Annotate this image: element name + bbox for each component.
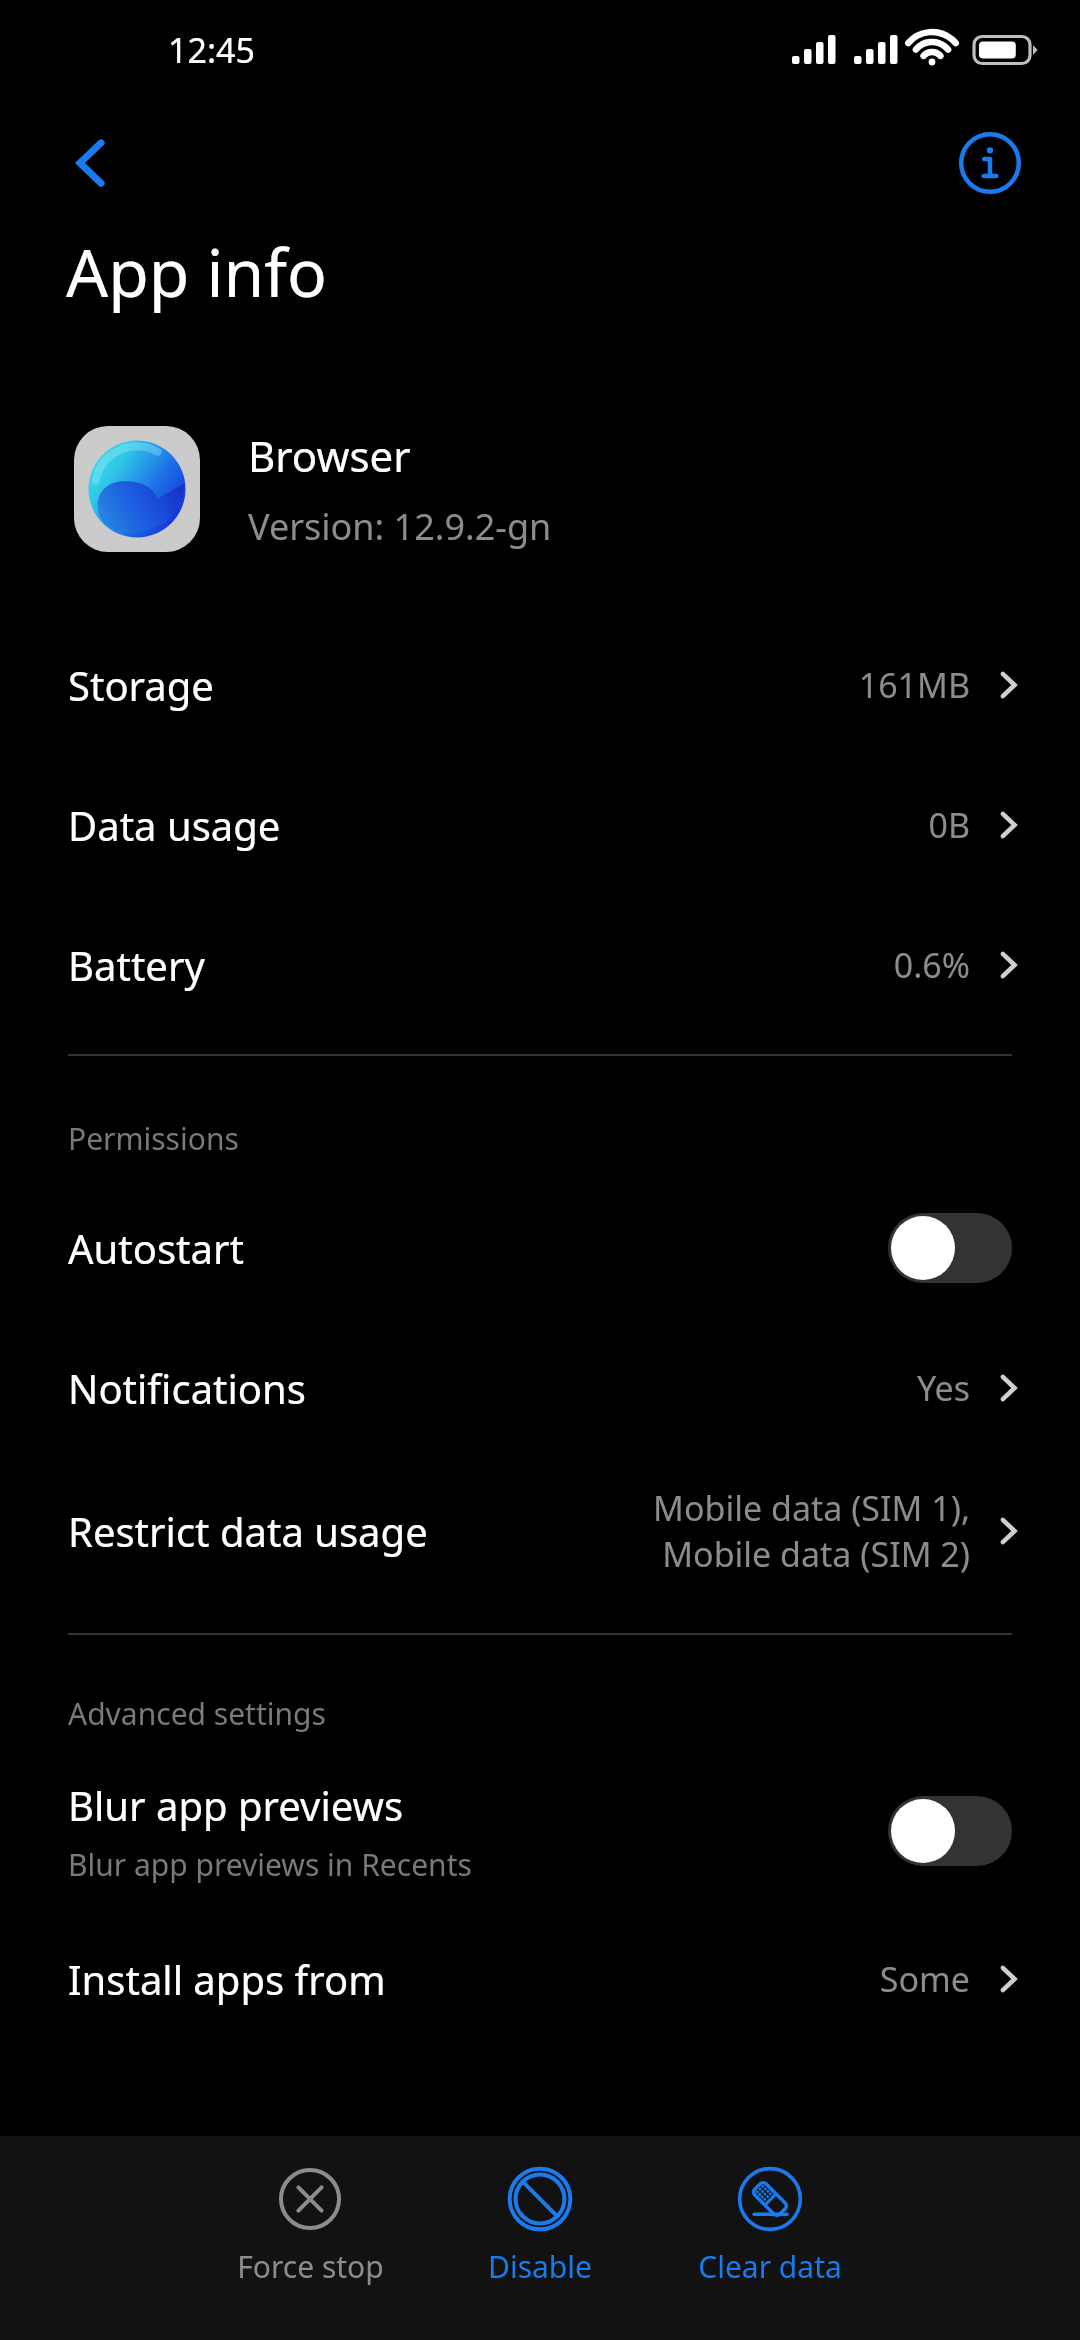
button[interactable]: Storage	[0, 638, 1080, 732]
staticText: Version: 12.9.2-gn	[248, 502, 552, 551]
staticText: App info	[66, 226, 1080, 316]
staticText: Clear data	[698, 2246, 842, 2287]
staticText: Mobile data (SIM 1),	[653, 1485, 970, 1531]
staticText: Restrict data usage	[68, 1504, 653, 1558]
button[interactable]: Autostart	[0, 1201, 1080, 1295]
staticText: Force stop	[237, 2246, 384, 2287]
button[interactable]: Force stop	[195, 2158, 425, 2295]
staticText: Install apps from	[68, 1952, 879, 2006]
button[interactable]: Battery	[0, 918, 1080, 1012]
button[interactable]: Install apps from	[0, 1932, 1080, 2026]
staticText: Storage	[68, 658, 858, 712]
staticText: Yes	[916, 1365, 970, 1411]
button[interactable]: Restrict data usage	[0, 1471, 1080, 1591]
button[interactable]: Notifications	[0, 1341, 1080, 1435]
staticText: Browser	[248, 427, 411, 484]
staticText: Blur app previews	[68, 1778, 404, 1832]
staticText: Disable	[488, 2246, 592, 2287]
button[interactable]: Disable	[425, 2158, 655, 2295]
staticText: 12:45	[168, 27, 255, 73]
button[interactable]: Clear data	[655, 2158, 885, 2295]
staticText: Advanced settings	[68, 1693, 1080, 1734]
staticText: Battery	[68, 938, 893, 992]
staticText: Blur app previews in Recents	[68, 1844, 472, 1885]
staticText: 0.6%	[893, 942, 970, 988]
staticText: Notifications	[68, 1361, 916, 1415]
staticText: Some	[879, 1956, 970, 2002]
staticText: Data usage	[68, 798, 928, 852]
button[interactable]: About this app	[942, 115, 1038, 211]
staticText: Mobile data (SIM 2)	[662, 1531, 970, 1577]
staticText: Autostart	[68, 1221, 244, 1275]
staticText: Permissions	[68, 1118, 1080, 1159]
staticText: 0B	[928, 802, 970, 848]
button[interactable]: Blur app previews	[0, 1766, 1080, 1896]
button[interactable]: Back	[42, 115, 138, 211]
staticText: 161MB	[858, 662, 970, 708]
button[interactable]: Data usage	[0, 778, 1080, 872]
